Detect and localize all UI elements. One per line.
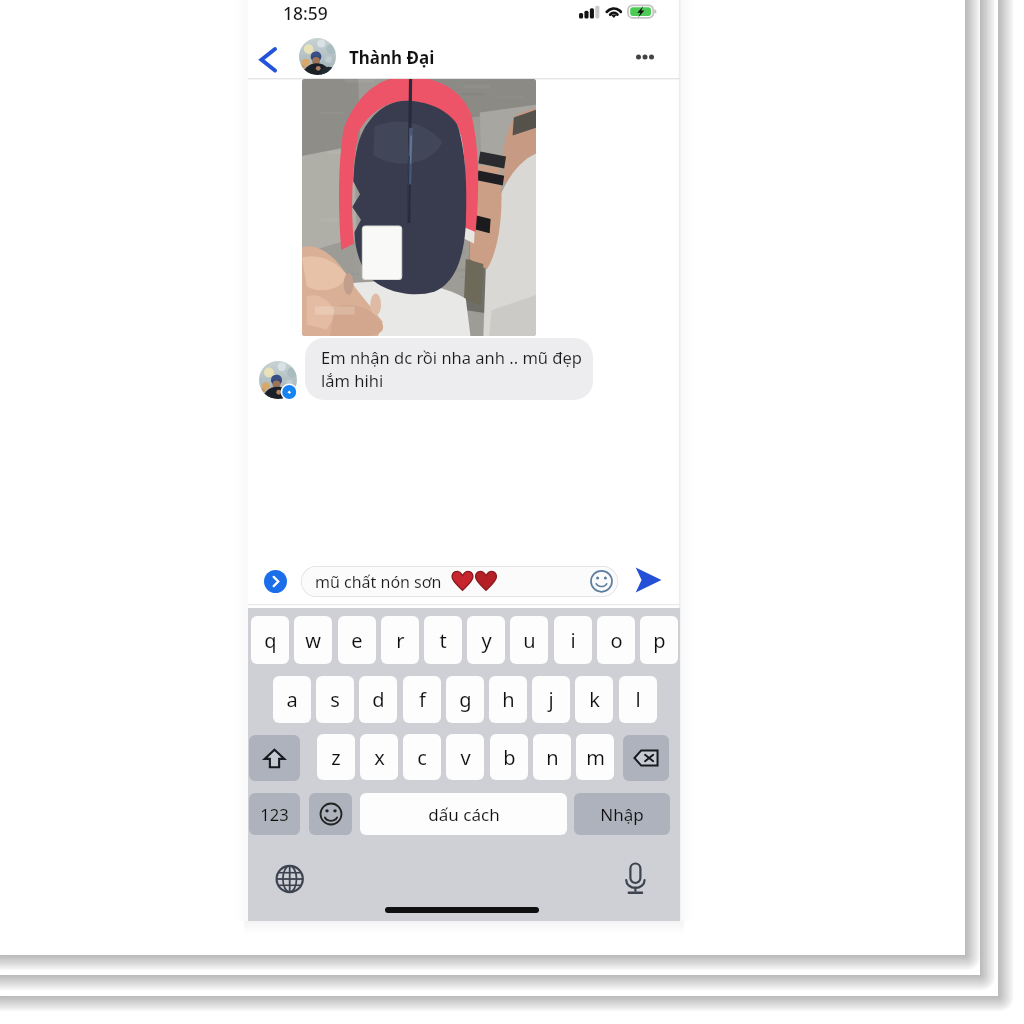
button[interactable]: Profile photo <box>299 38 336 75</box>
staticText: k <box>589 686 600 713</box>
button[interactable]: x <box>360 734 398 780</box>
staticText: mũ chất nón sơn <box>315 571 442 593</box>
button[interactable]: w <box>294 616 332 664</box>
other: Emoji <box>319 802 343 826</box>
button[interactable]: y <box>467 616 505 664</box>
staticText: g <box>459 686 472 713</box>
staticText: dấu cách <box>428 803 500 826</box>
button[interactable]: r <box>381 616 419 664</box>
button[interactable]: Nhập <box>574 793 670 835</box>
button[interactable]: 123 <box>249 793 300 835</box>
button[interactable]: Shift <box>249 735 300 781</box>
button[interactable]: p <box>640 616 678 664</box>
staticText: d <box>372 686 385 713</box>
staticText: i <box>570 627 576 654</box>
button[interactable]: q <box>251 616 289 664</box>
staticText: p <box>653 627 666 654</box>
staticText: e <box>351 627 363 654</box>
staticText: u <box>523 627 536 654</box>
staticText: Nhập <box>600 803 644 826</box>
button[interactable]: Sender avatar <box>259 361 297 399</box>
button[interactable]: o <box>597 616 635 664</box>
staticText: s <box>330 686 340 713</box>
button[interactable]: Thành Đại <box>349 46 435 69</box>
button[interactable]: Send <box>634 566 662 594</box>
staticText: b <box>503 744 516 771</box>
button[interactable]: e <box>338 616 376 664</box>
staticText: Em nhận dc rồi nha anh .. mũ đẹp lắm hih… <box>321 346 582 392</box>
staticText: w <box>305 627 321 654</box>
staticText: j <box>548 686 554 713</box>
button[interactable]: a <box>273 676 311 723</box>
staticText: a <box>286 686 298 713</box>
button[interactable]: v <box>446 734 484 780</box>
staticText: r <box>396 627 405 654</box>
staticText: q <box>264 627 277 654</box>
staticText: f <box>419 686 426 713</box>
button[interactable]: More options <box>628 44 662 70</box>
button[interactable]: f <box>403 676 441 723</box>
staticText: y <box>481 627 492 654</box>
button[interactable]: k <box>575 676 613 723</box>
button[interactable]: mũ chất nón sơn <box>301 566 618 597</box>
staticText: t <box>439 627 447 654</box>
button[interactable]: Em nhận dc rồi nha anh .. mũ đẹp lắm hih… <box>305 338 593 400</box>
button[interactable]: h <box>489 676 527 723</box>
staticText: x <box>374 744 385 771</box>
button[interactable]: t <box>424 616 462 664</box>
staticText: l <box>635 686 641 713</box>
staticText: v <box>460 744 471 771</box>
button[interactable]: d <box>359 676 397 723</box>
button[interactable]: dấu cách <box>360 793 567 835</box>
button[interactable]: Back <box>254 42 284 78</box>
button[interactable]: j <box>532 676 570 723</box>
button[interactable]: b <box>490 734 528 780</box>
staticText: n <box>546 744 559 771</box>
staticText: h <box>502 686 515 713</box>
staticText: m <box>586 744 605 771</box>
button[interactable]: Backspace <box>623 735 669 781</box>
staticText: 18:59 <box>283 1 328 25</box>
button[interactable]: m <box>576 734 614 780</box>
button[interactable]: z <box>317 734 355 780</box>
staticText: z <box>331 744 341 771</box>
button[interactable]: s <box>316 676 354 723</box>
button[interactable]: Emoji <box>309 793 352 835</box>
button[interactable]: g <box>446 676 484 723</box>
other: Backspace <box>634 749 658 767</box>
button[interactable]: c <box>403 734 441 780</box>
staticText: 123 <box>260 803 289 825</box>
button[interactable]: n <box>533 734 571 780</box>
button[interactable]: u <box>510 616 548 664</box>
button[interactable]: Photo of a cap <box>302 79 536 336</box>
other: Shift <box>264 749 285 768</box>
button[interactable]: Open actions <box>264 570 287 593</box>
button[interactable]: i <box>554 616 592 664</box>
staticText: o <box>610 627 623 654</box>
button[interactable]: l <box>619 676 657 723</box>
staticText: c <box>417 744 427 771</box>
